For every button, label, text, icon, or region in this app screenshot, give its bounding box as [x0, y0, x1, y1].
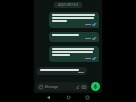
other: Attach	[76, 85, 80, 89]
staticText: AUJOURD'HUI	[58, 3, 78, 7]
button[interactable]: Send voice message	[91, 82, 100, 91]
button[interactable]	[49, 12, 99, 28]
staticText: Message	[45, 85, 59, 89]
button[interactable]: Recent apps	[83, 93, 92, 102]
button[interactable]	[49, 46, 99, 62]
button[interactable]: Message	[36, 82, 89, 91]
button[interactable]: AUJOURD'HUI	[54, 2, 82, 8]
button[interactable]: Home	[64, 93, 73, 102]
button[interactable]	[49, 32, 99, 42]
button[interactable]: Back	[44, 93, 53, 102]
button[interactable]	[37, 67, 87, 75]
other: Camera	[82, 85, 86, 89]
